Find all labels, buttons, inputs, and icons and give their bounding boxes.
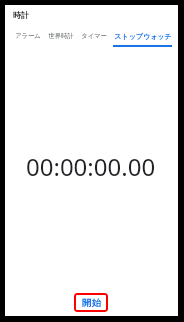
staticText: 開始 <box>82 297 101 309</box>
button[interactable]: 世界時計 <box>46 26 76 47</box>
staticText: 世界時計 <box>48 32 74 40</box>
staticText: 時計 <box>13 10 29 20</box>
button[interactable]: アラーム <box>12 26 43 47</box>
button[interactable]: タイマー <box>78 26 109 47</box>
button[interactable]: 開始 <box>74 293 108 312</box>
staticText: ストップウォッチ <box>114 32 172 41</box>
button[interactable]: ストップウォッチ <box>113 26 172 47</box>
staticText: 00:00:00.00 <box>26 150 156 183</box>
staticText: タイマー <box>81 32 107 40</box>
staticText: アラーム <box>15 32 41 40</box>
